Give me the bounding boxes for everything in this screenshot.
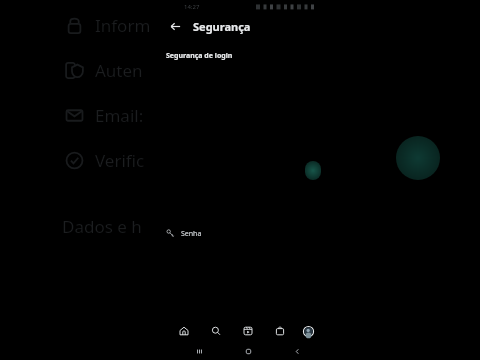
button[interactable]: Compras [264,322,296,340]
staticText: Auten [95,59,143,82]
staticText: Verific [95,149,145,172]
button[interactable]: Recentes [186,342,212,360]
button[interactable]: Início [168,322,200,340]
staticText: 14:27 [184,3,200,11]
staticText: Segurança [193,19,251,34]
button[interactable]: Voltar [164,15,186,37]
button[interactable]: Pesquisar [200,322,232,340]
staticText: Inform [95,14,151,37]
staticText: Senha [181,229,202,239]
button[interactable]: Início [235,342,261,360]
staticText: Dados e h [62,215,142,238]
button[interactable]: Voltar [284,342,310,360]
button[interactable]: Reels [232,322,264,340]
staticText: Segurança de login [166,51,233,61]
staticText: Email: [95,104,144,127]
button[interactable]: Perfil [296,322,320,340]
button[interactable]: Senha [160,63,320,360]
